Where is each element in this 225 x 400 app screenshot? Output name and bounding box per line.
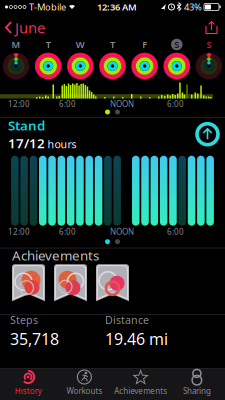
staticText: 35,718 (10, 328, 59, 349)
staticText: Steps (10, 313, 38, 327)
button[interactable]: Scroll to top (197, 124, 225, 145)
staticText: Achievements (114, 385, 167, 396)
staticText: Achievements (12, 246, 99, 264)
staticText: 6:00 (59, 226, 76, 237)
button[interactable]: Activity rings, Tuesday (32, 52, 64, 80)
staticText: S (206, 38, 211, 51)
staticText: Sharing (183, 385, 211, 396)
button[interactable]: History (0, 369, 56, 400)
staticText: hours (47, 137, 76, 151)
button[interactable]: Activity rings, Saturday (161, 52, 193, 80)
staticText: 12:36 AM (97, 1, 137, 13)
staticText: F (142, 38, 147, 51)
button[interactable]: Share (205, 18, 225, 37)
staticText: 43% (184, 1, 202, 13)
staticText: Stand (8, 116, 45, 134)
button[interactable]: Activity rings, Friday (129, 52, 161, 80)
staticText: S (174, 38, 179, 51)
staticText: 19.46 mi (105, 328, 168, 349)
staticText: History (15, 385, 42, 396)
staticText: 17/12 (8, 134, 45, 152)
staticText: T (46, 38, 51, 51)
staticText: 12:00 (8, 226, 30, 237)
staticText: 12:00 (8, 99, 30, 109)
button[interactable]: Achievements (112, 369, 169, 400)
staticText: Distance (105, 313, 149, 327)
button[interactable]: Workouts (56, 369, 112, 400)
button[interactable]: Activity rings, Thursday (96, 52, 128, 80)
staticText: NOON (110, 226, 134, 237)
button[interactable]: June (0, 14, 45, 41)
staticText: T-Mobile (29, 1, 66, 13)
button[interactable]: Achievement badge (54, 264, 87, 301)
button[interactable]: Achievement badge (96, 264, 129, 301)
staticText: M (12, 38, 21, 51)
staticText: T (110, 38, 115, 51)
button[interactable]: Activity rings, Monday (0, 52, 32, 80)
staticText: W (76, 38, 85, 51)
button[interactable]: Activity rings, Wednesday (64, 52, 96, 80)
button[interactable]: Achievement badge (12, 264, 45, 301)
staticText: Workouts (66, 385, 102, 396)
staticText: 6:00 (59, 99, 76, 109)
staticText: 6:00 (167, 226, 184, 237)
staticText: NOON (110, 99, 134, 109)
staticText: 6:00 (167, 99, 184, 109)
button[interactable]: Activity rings, Sunday (193, 52, 225, 80)
button[interactable]: Sharing (169, 369, 225, 400)
staticText: June (15, 18, 45, 37)
